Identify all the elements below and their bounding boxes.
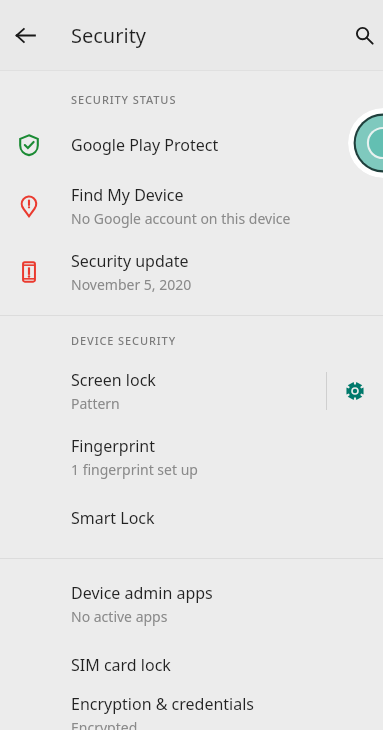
staticText: Security xyxy=(71,22,147,49)
button[interactable]: Back xyxy=(9,19,41,51)
staticText: Google Play Protect xyxy=(71,134,219,156)
button[interactable]: Screen lock xyxy=(0,358,326,424)
staticText: SECURITY STATUS xyxy=(71,92,177,107)
button[interactable]: Find My Device xyxy=(0,173,383,239)
button[interactable]: Device admin apps xyxy=(0,571,383,637)
staticText: November 5, 2020 xyxy=(71,275,192,294)
staticText: Smart Lock xyxy=(71,507,155,529)
staticText: Encrypted xyxy=(71,718,138,730)
staticText: Security update xyxy=(71,250,189,272)
staticText: SIM card lock xyxy=(71,654,171,676)
staticText: Fingerprint xyxy=(71,435,156,457)
staticText: No Google account on this device xyxy=(71,209,291,228)
button[interactable]: Screen lock settings xyxy=(327,358,383,424)
staticText: Pattern xyxy=(71,394,120,413)
staticText: Encryption & credentials xyxy=(71,693,254,715)
staticText: Screen lock xyxy=(71,369,156,391)
staticText: 1 fingerprint set up xyxy=(71,460,198,479)
button[interactable]: SIM card lock xyxy=(0,637,383,693)
staticText: Find My Device xyxy=(71,184,184,206)
button[interactable]: Google Play Protect xyxy=(0,117,383,173)
button[interactable]: Encryption & credentials xyxy=(0,693,383,730)
button[interactable]: Security update xyxy=(0,239,383,305)
staticText: DEVICE SECURITY xyxy=(71,333,177,348)
button[interactable]: Fingerprint xyxy=(0,424,383,490)
button[interactable]: Smart Lock xyxy=(0,490,383,546)
button[interactable]: Search xyxy=(348,19,380,51)
staticText: Device admin apps xyxy=(71,582,213,604)
staticText: No active apps xyxy=(71,607,168,626)
